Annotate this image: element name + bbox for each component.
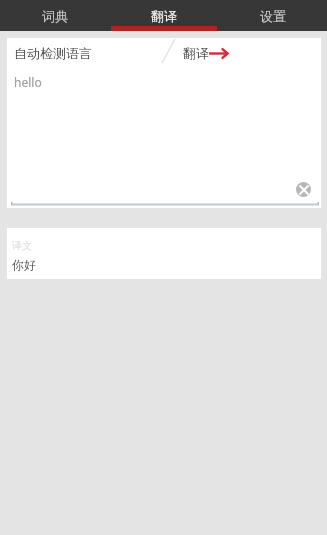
staticText: 自动检测语言 [14,45,92,61]
button[interactable]: Clear text [296,182,311,197]
staticText: 翻译 [151,8,177,24]
staticText: 翻译 [183,45,209,61]
button[interactable]: Text to translate [7,68,321,208]
staticText: 设置 [260,8,286,24]
button[interactable]: 设置 [218,0,327,31]
staticText: hello [14,74,42,90]
button[interactable]: 自动检测语言 [7,38,164,68]
staticText: 词典 [42,8,68,24]
button[interactable]: 翻译 [109,0,218,31]
button[interactable]: 翻译 [183,38,230,68]
button[interactable]: 译文 [7,228,321,279]
button[interactable]: 词典 [0,0,109,31]
staticText: 译文 [12,239,32,252]
staticText: 你好 [12,257,36,272]
